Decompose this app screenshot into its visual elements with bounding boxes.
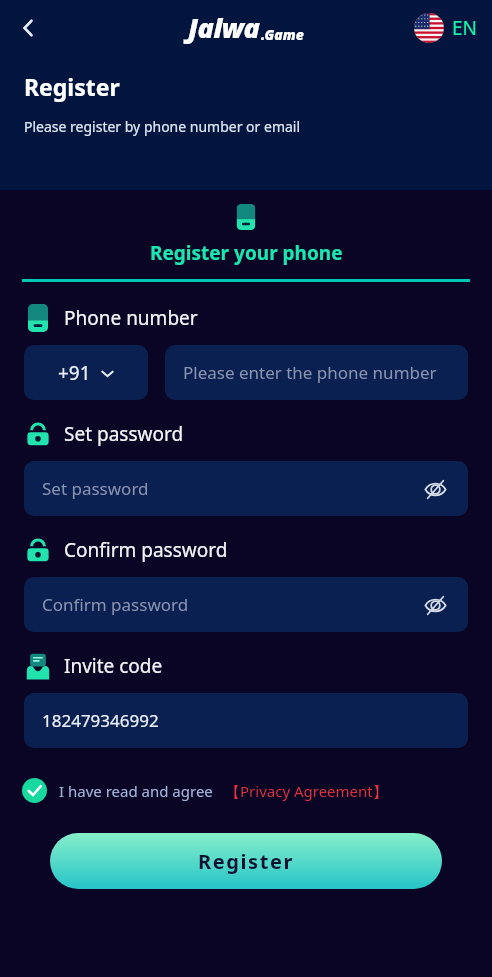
staticText: Confirm password — [42, 593, 189, 616]
other: Agree checkbox — [22, 778, 47, 803]
staticText: EN — [452, 15, 478, 41]
staticText: Register your phone — [150, 240, 343, 266]
staticText: Jalwa — [188, 9, 260, 46]
staticText: .Game — [261, 25, 304, 44]
button[interactable]: Toggle password visibility — [420, 590, 450, 620]
staticText: Phone number — [64, 305, 198, 331]
button[interactable]: Register your phone — [0, 204, 492, 282]
staticText: Register — [24, 71, 120, 102]
staticText: Set password — [64, 421, 184, 447]
button[interactable]: Back — [8, 8, 48, 48]
button[interactable]: Register — [50, 833, 442, 889]
button[interactable]: 182479346992 — [24, 693, 468, 748]
staticText: Please enter the phone number — [183, 361, 437, 384]
other: Language — [414, 13, 444, 43]
button[interactable]: Language — [414, 13, 478, 43]
staticText: Set password — [42, 477, 149, 500]
staticText: Confirm password — [64, 537, 228, 563]
staticText: 182479346992 — [42, 709, 159, 732]
staticText: I have read and agree — [59, 781, 213, 801]
staticText: Please register by phone number or email — [24, 117, 301, 136]
staticText: Invite code — [64, 653, 163, 679]
button[interactable]: Agree checkbox — [22, 778, 470, 803]
staticText: +91 — [58, 360, 91, 386]
staticText: 【Privacy Agreement】 — [225, 781, 388, 801]
button[interactable]: Confirm password — [24, 577, 468, 632]
staticText: Register — [198, 848, 295, 875]
button[interactable]: 【Privacy Agreement】 — [225, 781, 388, 801]
button[interactable]: Please enter the phone number — [165, 345, 468, 400]
button[interactable]: +91 — [24, 345, 148, 400]
button[interactable]: Set password — [24, 461, 468, 516]
button[interactable]: Toggle password visibility — [420, 474, 450, 504]
